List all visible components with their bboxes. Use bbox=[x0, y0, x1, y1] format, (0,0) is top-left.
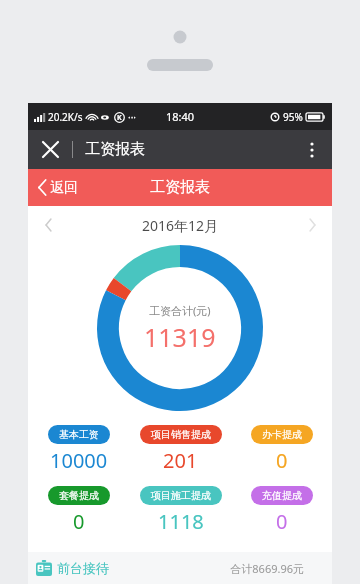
staticText: 基本工资 bbox=[59, 428, 99, 441]
staticText: 18:40 bbox=[166, 109, 195, 124]
staticText: 95% bbox=[283, 110, 303, 124]
button[interactable]: 办卡提成 bbox=[231, 422, 332, 477]
staticText: 项目销售提成 bbox=[151, 428, 211, 441]
staticText: 11319 bbox=[144, 320, 216, 354]
staticText: 20.2K/s bbox=[48, 110, 83, 124]
staticText: 充值提成 bbox=[262, 489, 302, 502]
staticText: 0 bbox=[276, 508, 288, 535]
staticText: 2016年12月 bbox=[142, 216, 219, 235]
button[interactable]: Previous month bbox=[28, 206, 68, 244]
button[interactable]: Next month bbox=[292, 206, 332, 244]
staticText: K bbox=[117, 113, 122, 123]
button[interactable]: More options bbox=[292, 130, 332, 169]
button[interactable]: 返回 bbox=[28, 169, 88, 206]
staticText: 工资报表 bbox=[150, 178, 210, 197]
button[interactable]: 项目施工提成 bbox=[130, 483, 231, 538]
staticText: 项目施工提成 bbox=[151, 489, 211, 502]
staticText: ··· bbox=[128, 110, 137, 124]
button[interactable]: 项目销售提成 bbox=[130, 422, 231, 477]
button[interactable]: 充值提成 bbox=[231, 483, 332, 538]
staticText: 返回 bbox=[50, 179, 78, 197]
button[interactable]: 前台接待 bbox=[28, 552, 117, 584]
staticText: 套餐提成 bbox=[59, 489, 99, 502]
staticText: 201 bbox=[163, 447, 198, 474]
staticText: 前台接待 bbox=[57, 560, 109, 576]
button[interactable]: 套餐提成 bbox=[28, 483, 130, 538]
staticText: 工资合计(元) bbox=[149, 303, 211, 318]
staticText: 办卡提成 bbox=[262, 428, 302, 441]
staticText: 10000 bbox=[50, 447, 108, 474]
staticText: 工资报表 bbox=[85, 140, 145, 159]
button[interactable]: 基本工资 bbox=[28, 422, 130, 477]
staticText: 合计8669.96元 bbox=[230, 561, 304, 576]
staticText: 1118 bbox=[158, 508, 204, 535]
staticText: 0 bbox=[73, 508, 85, 535]
button[interactable]: Close bbox=[28, 130, 72, 169]
staticText: 0 bbox=[276, 447, 288, 474]
